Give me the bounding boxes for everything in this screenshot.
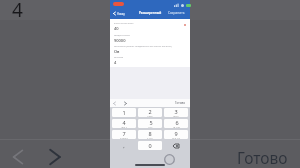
button[interactable]: Назад: [113, 11, 125, 16]
button[interactable]: 8: [138, 130, 162, 139]
staticText: D E F: [173, 115, 179, 117]
staticText: Назад: [117, 12, 125, 16]
staticText: 4: [114, 60, 117, 64]
button[interactable]: 6: [164, 119, 188, 128]
staticText: 1: [122, 109, 126, 116]
staticText: 4: [12, 0, 23, 23]
button[interactable]: 1: [112, 108, 136, 117]
staticText: ЗАКАЗ ОТ КЛИЕНТА: [114, 22, 134, 25]
staticText: 0: [148, 142, 152, 149]
button[interactable]: Delete: [164, 141, 188, 150]
staticText: M N O: [173, 126, 180, 128]
staticText: 4: [122, 119, 126, 126]
button[interactable]: 3: [164, 108, 188, 117]
button[interactable]: ОСТАТОК: [110, 53, 190, 64]
staticText: 8: [148, 130, 152, 137]
button[interactable]: Готово: [237, 147, 288, 168]
staticText: ОБЩАЯ СУММА: [114, 34, 131, 37]
button[interactable]: Готово: [175, 101, 186, 105]
button[interactable]: ОПЛАЧЕНО (СУММА ПРЕДОПЛАТЫ ПО ЗАКАЗУ КЛИ…: [110, 42, 190, 53]
button[interactable]: ,: [112, 141, 136, 150]
button[interactable]: Previous field: [111, 100, 118, 107]
staticText: 6: [175, 119, 179, 126]
staticText: T U V: [147, 137, 153, 139]
staticText: 5: [149, 119, 153, 126]
button[interactable]: 0: [138, 141, 162, 150]
staticText: G H I: [121, 126, 127, 128]
button[interactable]: ОБЩАЯ СУММА: [110, 31, 190, 42]
button[interactable]: 9: [164, 130, 188, 139]
staticText: 40: [114, 26, 119, 31]
staticText: 90000: [114, 38, 126, 42]
button[interactable]: 4: [112, 119, 136, 128]
button[interactable]: Next field: [122, 100, 129, 107]
button[interactable]: Previous: [4, 143, 32, 168]
button[interactable]: 2: [138, 108, 162, 117]
button[interactable]: 7: [112, 130, 136, 139]
button[interactable]: Next: [41, 143, 69, 168]
staticText: ,: [123, 142, 125, 149]
other: Delete: [173, 144, 179, 148]
staticText: ОПЛАЧЕНО (СУММА ПРЕДОПЛАТЫ ПО ЗАКАЗУ КЛИ…: [114, 45, 172, 48]
staticText: 9: [174, 130, 178, 137]
staticText: 2: [148, 108, 152, 115]
staticText: Расширенный: [139, 11, 162, 15]
button[interactable]: Сохранить: [168, 11, 185, 15]
button[interactable]: 5: [138, 119, 162, 128]
staticText: Готово: [237, 147, 288, 168]
staticText: Ов: [114, 49, 120, 53]
staticText: P Q R S: [120, 137, 128, 139]
staticText: J K L: [148, 126, 153, 128]
staticText: 3: [174, 108, 178, 115]
staticText: W X Y Z: [172, 137, 180, 139]
staticText: ОСТАТОК: [114, 56, 124, 59]
button[interactable]: ЗАКАЗ ОТ КЛИЕНТА: [110, 19, 190, 31]
staticText: A B C: [147, 115, 153, 117]
staticText: 7: [122, 130, 126, 137]
